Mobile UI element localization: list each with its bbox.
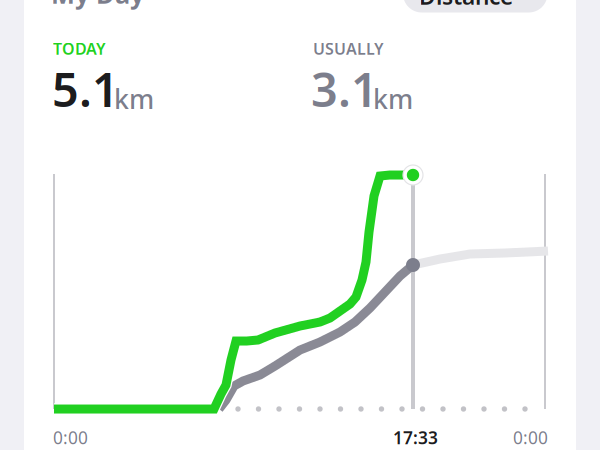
staticText: TODAY [53, 38, 106, 59]
staticText: Distance [419, 0, 513, 11]
staticText: km [114, 81, 154, 116]
staticText: USUALLY [313, 38, 384, 59]
staticText: 0:00 [53, 426, 88, 449]
staticText: km [373, 81, 413, 116]
button[interactable]: My Day [51, 0, 144, 11]
staticText: 5.1 [52, 58, 119, 120]
staticText: 0:00 [513, 426, 548, 449]
staticText: 17:33 [393, 426, 438, 449]
button[interactable]: Distance [0, 0, 600, 450]
staticText: 3.1 [311, 58, 378, 120]
staticText: My Day [51, 0, 144, 11]
